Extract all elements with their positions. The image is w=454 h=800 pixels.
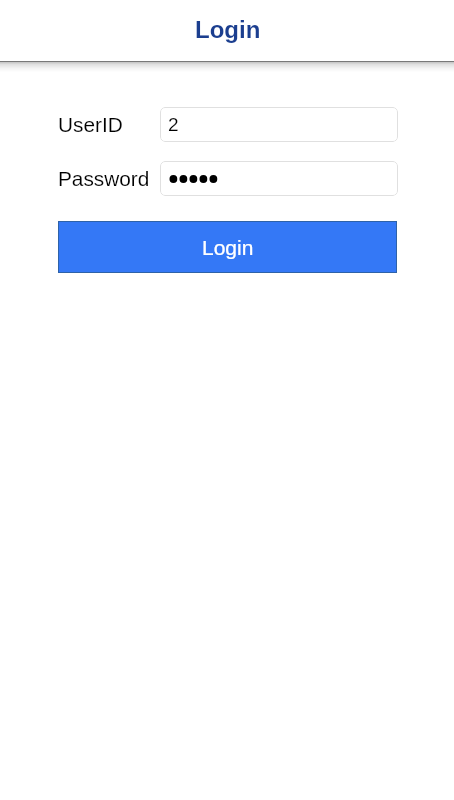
- staticText: Login: [195, 16, 261, 43]
- button[interactable]: Login: [58, 221, 397, 273]
- button[interactable]: UserID input: [160, 107, 398, 142]
- staticText: Login: [202, 236, 254, 259]
- staticText: Password: [58, 167, 150, 190]
- button[interactable]: Password input: [160, 161, 398, 196]
- staticText: 2: [168, 114, 179, 135]
- staticText: UserID: [58, 113, 123, 136]
